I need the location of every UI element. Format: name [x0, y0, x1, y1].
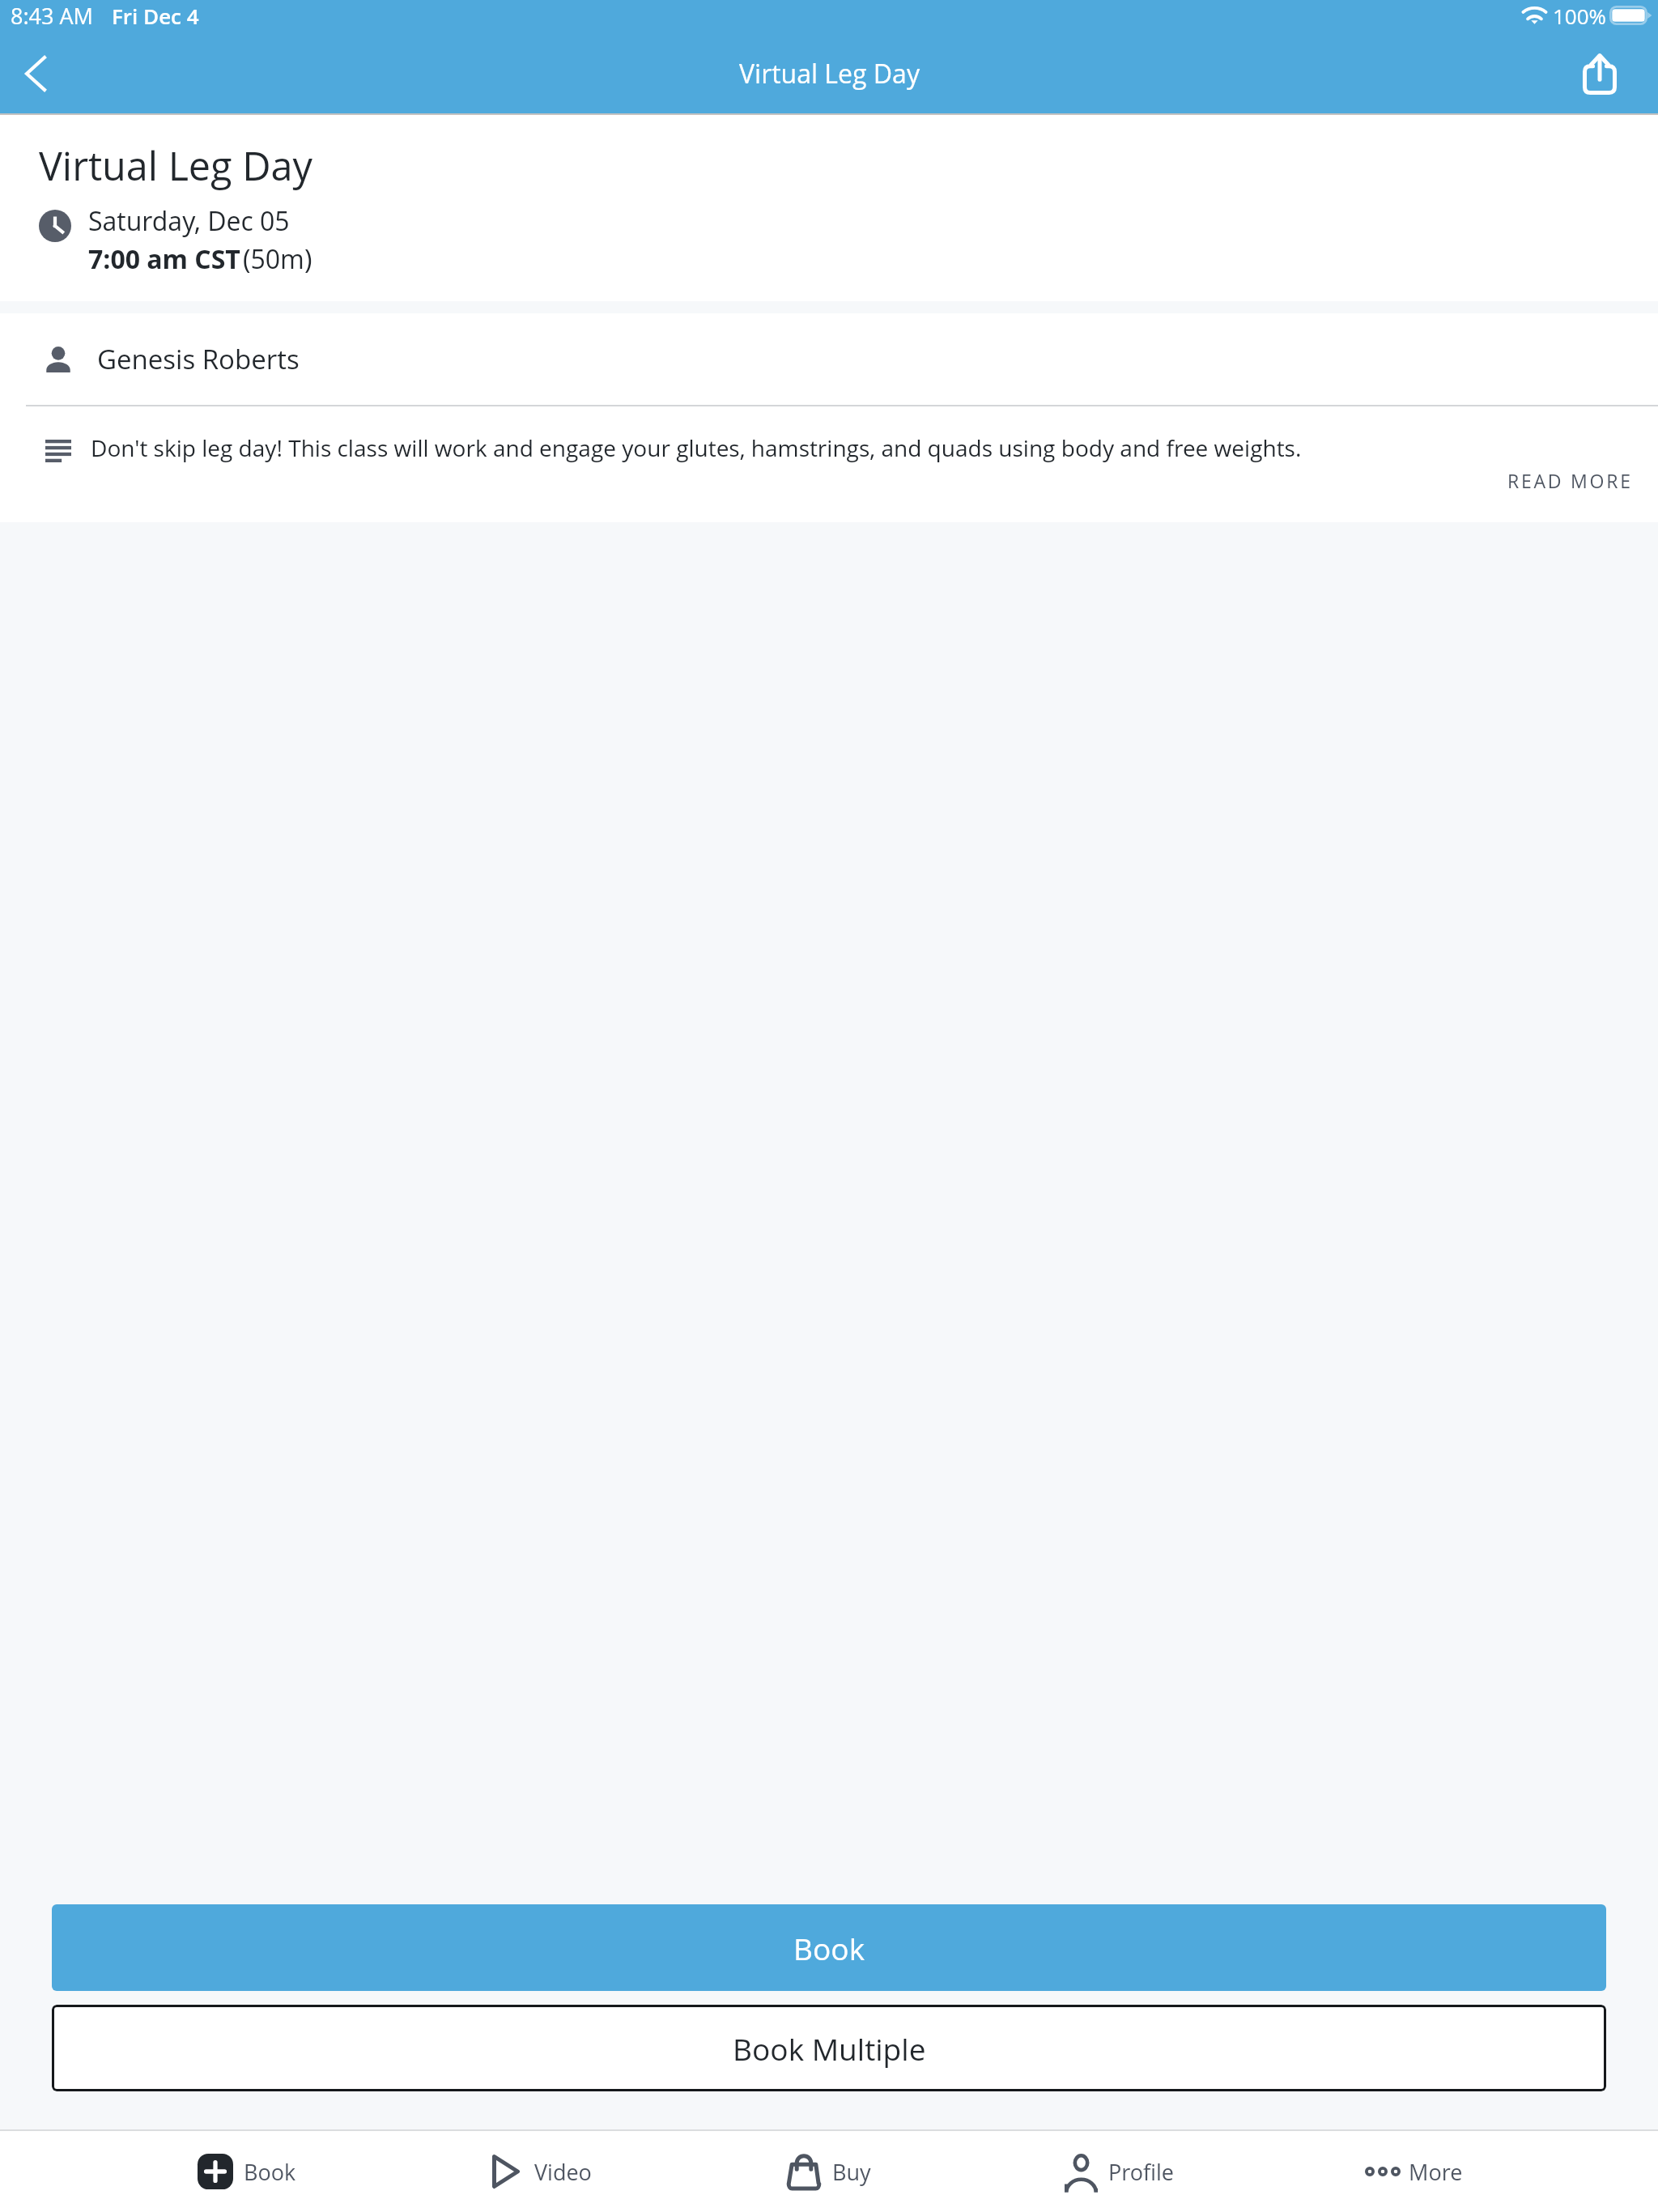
- staticText: Don't skip leg day! This class will work…: [91, 432, 1302, 463]
- staticText: 8:43 AM: [11, 1, 93, 31]
- button[interactable]: Book Multiple: [52, 2005, 1606, 2091]
- staticText: 7:00 am CST (50m): [88, 241, 312, 277]
- staticText: Virtual Leg Day: [739, 56, 920, 91]
- staticText: 100%: [1553, 2, 1607, 30]
- button[interactable]: Buy: [682, 2131, 975, 2212]
- staticText: Profile: [1108, 2157, 1174, 2187]
- staticText: More: [1409, 2157, 1463, 2187]
- staticText: Saturday, Dec 05: [88, 203, 290, 239]
- button[interactable]: Don't skip leg day! This class will work…: [0, 406, 1658, 522]
- staticText: Genesis Roberts: [97, 341, 300, 377]
- button[interactable]: Genesis Roberts: [0, 313, 1658, 405]
- staticText: Book: [793, 1928, 865, 1968]
- staticText: READ MORE: [1507, 468, 1633, 493]
- button[interactable]: More: [1267, 2131, 1559, 2212]
- button[interactable]: Profile: [975, 2131, 1267, 2212]
- staticText: Book: [244, 2157, 296, 2187]
- button[interactable]: Video: [390, 2131, 682, 2212]
- button[interactable]: Back: [5, 43, 66, 104]
- button[interactable]: Book: [52, 1904, 1606, 1991]
- staticText: Video: [534, 2157, 592, 2187]
- staticText: Virtual Leg Day: [39, 138, 312, 192]
- staticText: Book Multiple: [733, 2028, 926, 2069]
- staticText: Fri Dec 4: [112, 2, 199, 30]
- button[interactable]: Book: [99, 2131, 390, 2212]
- staticText: Buy: [832, 2157, 871, 2187]
- button[interactable]: Share: [1569, 43, 1630, 104]
